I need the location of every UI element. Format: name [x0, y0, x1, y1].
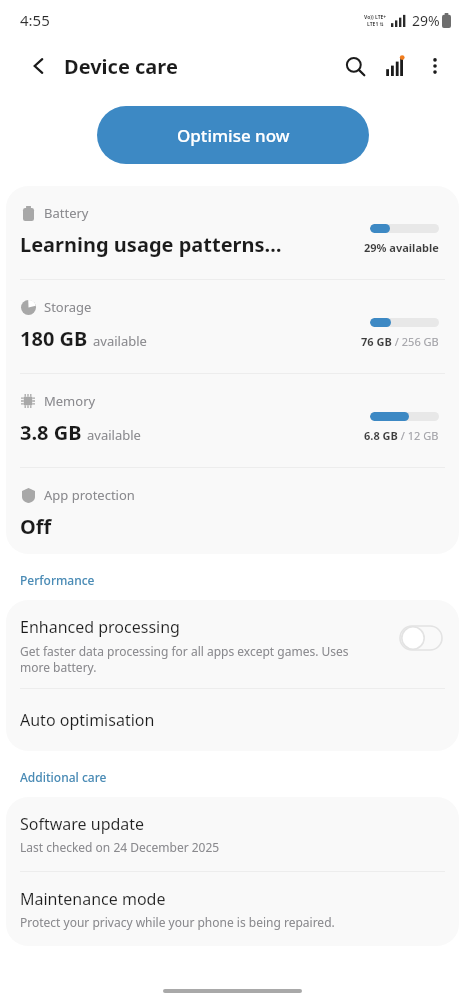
button[interactable]: Memory [6, 374, 459, 467]
staticText: Battery [44, 204, 89, 222]
staticText: Auto optimisation [20, 709, 155, 731]
button[interactable]: Optimise now [97, 106, 369, 164]
staticText: Vo)) LTE+ [364, 14, 387, 21]
staticText: 6.8 GB [364, 428, 398, 443]
staticText: Enhanced processing [20, 616, 180, 638]
staticText: available [87, 426, 141, 444]
staticText: Last checked on 24 December 2025 [20, 839, 220, 855]
staticText: Device care [64, 53, 178, 80]
button[interactable]: Auto optimisation [6, 689, 459, 751]
staticText: 29% available [364, 240, 439, 255]
staticText: 29% [412, 11, 440, 30]
staticText: 3.8 GB [20, 419, 82, 446]
staticText: Storage [44, 298, 92, 316]
button[interactable]: App protection [6, 468, 459, 544]
staticText: / 12 GB [398, 428, 439, 443]
staticText: available [93, 332, 147, 350]
staticText: Optimise now [177, 124, 290, 147]
staticText: Protect your privacy while your phone is… [20, 914, 335, 930]
button[interactable]: Maintenance mode [6, 872, 459, 946]
button[interactable]: Back [22, 49, 56, 83]
staticText: Additional care [20, 769, 107, 785]
staticText: Learning usage patterns… [20, 231, 282, 258]
button[interactable]: Search [335, 46, 375, 86]
staticText: Off [20, 513, 52, 540]
button[interactable]: More options [415, 46, 455, 86]
staticText: Memory [44, 392, 96, 410]
staticText: App protection [44, 486, 135, 504]
button[interactable]: Enhanced processing [6, 600, 459, 688]
button[interactable]: Software update [6, 797, 459, 871]
staticText: / 256 GB [392, 334, 439, 349]
staticText: Performance [20, 572, 95, 588]
button[interactable]: Usage statistics [375, 46, 415, 86]
staticText: Maintenance mode [20, 888, 166, 910]
staticText: LTE1 ⇅ [367, 21, 384, 28]
button[interactable]: Enhanced processing toggle [397, 622, 445, 654]
button[interactable]: Battery [6, 186, 459, 279]
staticText: Get faster data processing for all apps … [20, 643, 363, 675]
staticText: 4:55 [20, 10, 50, 30]
staticText: Software update [20, 813, 145, 835]
staticText: 180 GB [20, 325, 88, 352]
button[interactable]: Storage [6, 280, 459, 373]
staticText: 76 GB [361, 334, 392, 349]
